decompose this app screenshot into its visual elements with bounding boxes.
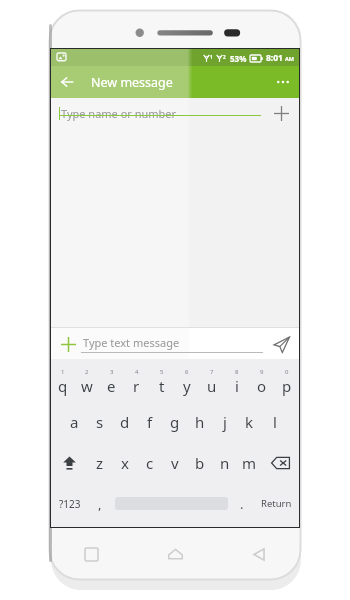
- staticText: 6: [185, 368, 189, 376]
- staticText: 8:01: [266, 52, 283, 64]
- button[interactable]: 3: [99, 362, 124, 402]
- staticText: 1: [210, 54, 213, 60]
- button[interactable]: Return: [254, 483, 299, 524]
- staticText: h: [195, 412, 205, 432]
- button[interactable]: Shift: [51, 442, 87, 483]
- button[interactable]: 6: [174, 362, 199, 402]
- button[interactable]: Back: [217, 528, 301, 580]
- button[interactable]: h: [187, 402, 212, 442]
- button[interactable]: g: [162, 402, 187, 442]
- button[interactable]: x: [112, 442, 137, 483]
- staticText: 4: [135, 368, 139, 376]
- staticText: 9: [260, 368, 264, 376]
- staticText: e: [107, 376, 116, 396]
- button[interactable]: 0: [274, 362, 299, 402]
- staticText: 1: [61, 368, 65, 376]
- staticText: a: [70, 412, 79, 432]
- button[interactable]: Back: [51, 66, 83, 98]
- staticText: 7: [210, 368, 214, 376]
- button[interactable]: Add attachment: [55, 331, 81, 357]
- button[interactable]: 8: [224, 362, 249, 402]
- staticText: l: [273, 412, 277, 432]
- button[interactable]: 4: [124, 362, 149, 402]
- button[interactable]: f: [137, 402, 162, 442]
- button[interactable]: z: [87, 442, 112, 483]
- button[interactable]: 9: [249, 362, 274, 402]
- button[interactable]: k: [237, 402, 262, 442]
- staticText: b: [195, 453, 205, 473]
- staticText: Type text message: [83, 335, 180, 350]
- button[interactable]: .: [230, 483, 254, 524]
- staticText: z: [96, 453, 104, 473]
- staticText: AM: [285, 55, 294, 62]
- staticText: New message: [91, 74, 173, 91]
- button[interactable]: v: [162, 442, 187, 483]
- staticText: 2: [223, 54, 226, 60]
- staticText: j: [223, 412, 227, 432]
- button[interactable]: c: [137, 442, 162, 483]
- button[interactable]: Backspace: [262, 442, 299, 483]
- staticText: 53%: [230, 53, 247, 64]
- button[interactable]: l: [262, 402, 287, 442]
- staticText: y: [183, 376, 191, 396]
- staticText: g: [170, 412, 180, 432]
- staticText: m: [242, 453, 257, 473]
- staticText: c: [146, 453, 154, 473]
- staticText: x: [121, 453, 129, 473]
- staticText: w: [81, 376, 93, 396]
- button[interactable]: Space: [112, 483, 230, 524]
- staticText: Return: [261, 497, 292, 510]
- staticText: 3: [110, 368, 114, 376]
- button[interactable]: m: [237, 442, 262, 483]
- button[interactable]: 5: [149, 362, 174, 402]
- staticText: 0: [285, 368, 289, 376]
- staticText: v: [171, 453, 179, 473]
- button[interactable]: b: [187, 442, 212, 483]
- button[interactable]: Home: [133, 528, 217, 580]
- staticText: t: [159, 376, 165, 396]
- button[interactable]: ,: [88, 483, 112, 524]
- button[interactable]: a: [62, 402, 87, 442]
- button[interactable]: s: [87, 402, 112, 442]
- staticText: ?123: [59, 497, 81, 511]
- staticText: .: [240, 495, 244, 513]
- button[interactable]: Send: [267, 330, 295, 358]
- staticText: 5: [160, 368, 164, 376]
- staticText: s: [96, 412, 104, 432]
- staticText: o: [257, 376, 267, 396]
- button[interactable]: 7: [199, 362, 224, 402]
- staticText: d: [120, 412, 130, 432]
- button[interactable]: Add recipient: [267, 99, 295, 127]
- staticText: i: [235, 376, 239, 396]
- staticText: ,: [98, 495, 102, 513]
- staticText: f: [147, 412, 153, 432]
- button[interactable]: Type text message: [81, 328, 263, 359]
- staticText: k: [245, 412, 254, 432]
- button[interactable]: Recent apps: [49, 528, 133, 580]
- button[interactable]: 2: [75, 362, 99, 402]
- staticText: 8: [235, 368, 239, 376]
- staticText: r: [133, 376, 140, 396]
- staticText: u: [207, 376, 217, 396]
- staticText: 2: [85, 368, 89, 376]
- button[interactable]: 1: [51, 362, 75, 402]
- button[interactable]: d: [112, 402, 137, 442]
- button[interactable]: j: [212, 402, 237, 442]
- button[interactable]: n: [212, 442, 237, 483]
- button[interactable]: Type name or number: [59, 106, 261, 121]
- button[interactable]: ?123: [51, 483, 88, 524]
- staticText: n: [220, 453, 230, 473]
- staticText: p: [282, 376, 292, 396]
- staticText: Type name or number: [61, 106, 177, 121]
- button[interactable]: More options: [267, 66, 299, 98]
- staticText: q: [58, 376, 68, 396]
